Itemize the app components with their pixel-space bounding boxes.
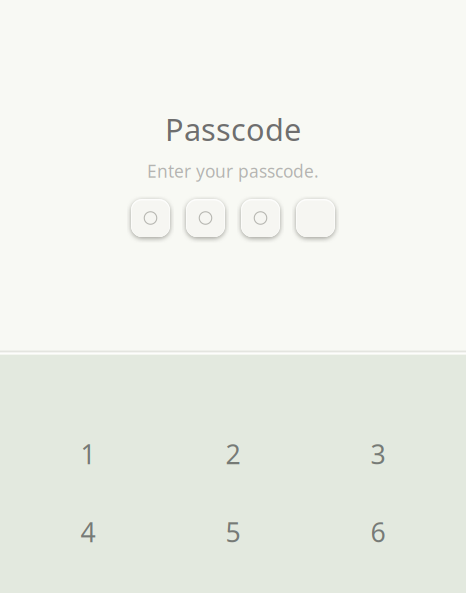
staticText: 5	[225, 514, 240, 550]
button[interactable]: 3	[305, 415, 450, 493]
button[interactable]: 5	[160, 493, 305, 571]
button[interactable]: 1	[15, 415, 160, 493]
staticText: 6	[370, 514, 385, 550]
staticText: 1	[80, 436, 95, 472]
button[interactable]: 4	[15, 493, 160, 571]
staticText: Enter your passcode.	[147, 159, 319, 182]
staticText: Passcode	[165, 109, 301, 149]
button[interactable]: 6	[305, 493, 450, 571]
staticText: 4	[80, 514, 95, 550]
staticText: 2	[225, 436, 240, 472]
staticText: 3	[370, 436, 385, 472]
button[interactable]: 2	[160, 415, 305, 493]
